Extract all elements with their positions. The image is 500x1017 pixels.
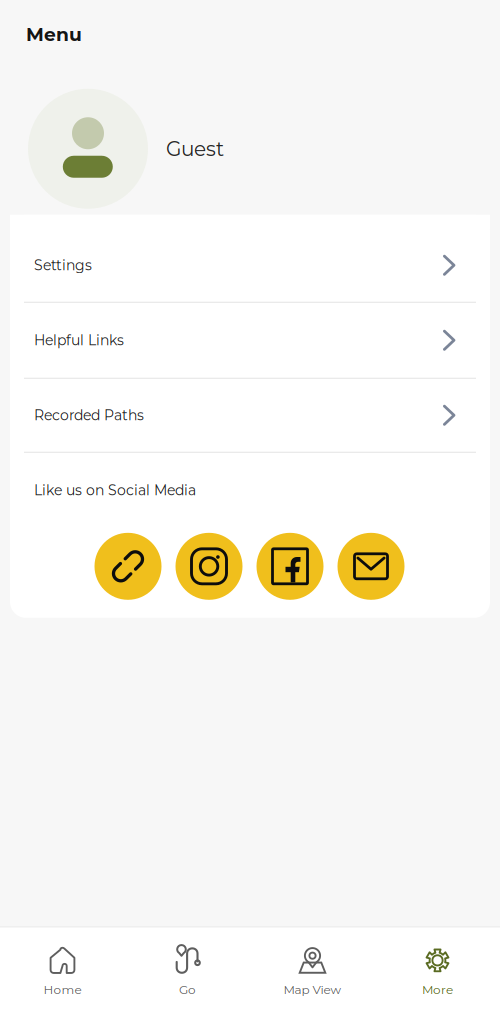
button[interactable]: Facebook	[256, 533, 323, 600]
button[interactable]: More	[375, 939, 500, 1001]
button[interactable]: Settings	[10, 229, 490, 302]
staticText: Helpful Links	[34, 332, 124, 349]
staticText: Recorded Paths	[34, 407, 144, 424]
button[interactable]: Helpful Links	[10, 303, 490, 378]
button[interactable]: Recorded Paths	[10, 379, 490, 452]
staticText: Settings	[34, 257, 92, 274]
button[interactable]: Go	[125, 939, 250, 1001]
staticText: Like us on Social Media	[34, 482, 196, 499]
staticText: Map View	[283, 982, 341, 997]
staticText: Go	[179, 982, 196, 997]
staticText: Menu	[26, 23, 82, 46]
staticText: More	[422, 982, 453, 997]
staticText: Guest	[166, 137, 224, 161]
button[interactable]: Home	[0, 939, 125, 1001]
staticText: Home	[43, 982, 81, 997]
button[interactable]: Instagram	[175, 533, 242, 600]
button[interactable]: Email	[337, 533, 404, 600]
button[interactable]: Website link	[94, 533, 161, 600]
button[interactable]: Map View	[250, 939, 375, 1001]
